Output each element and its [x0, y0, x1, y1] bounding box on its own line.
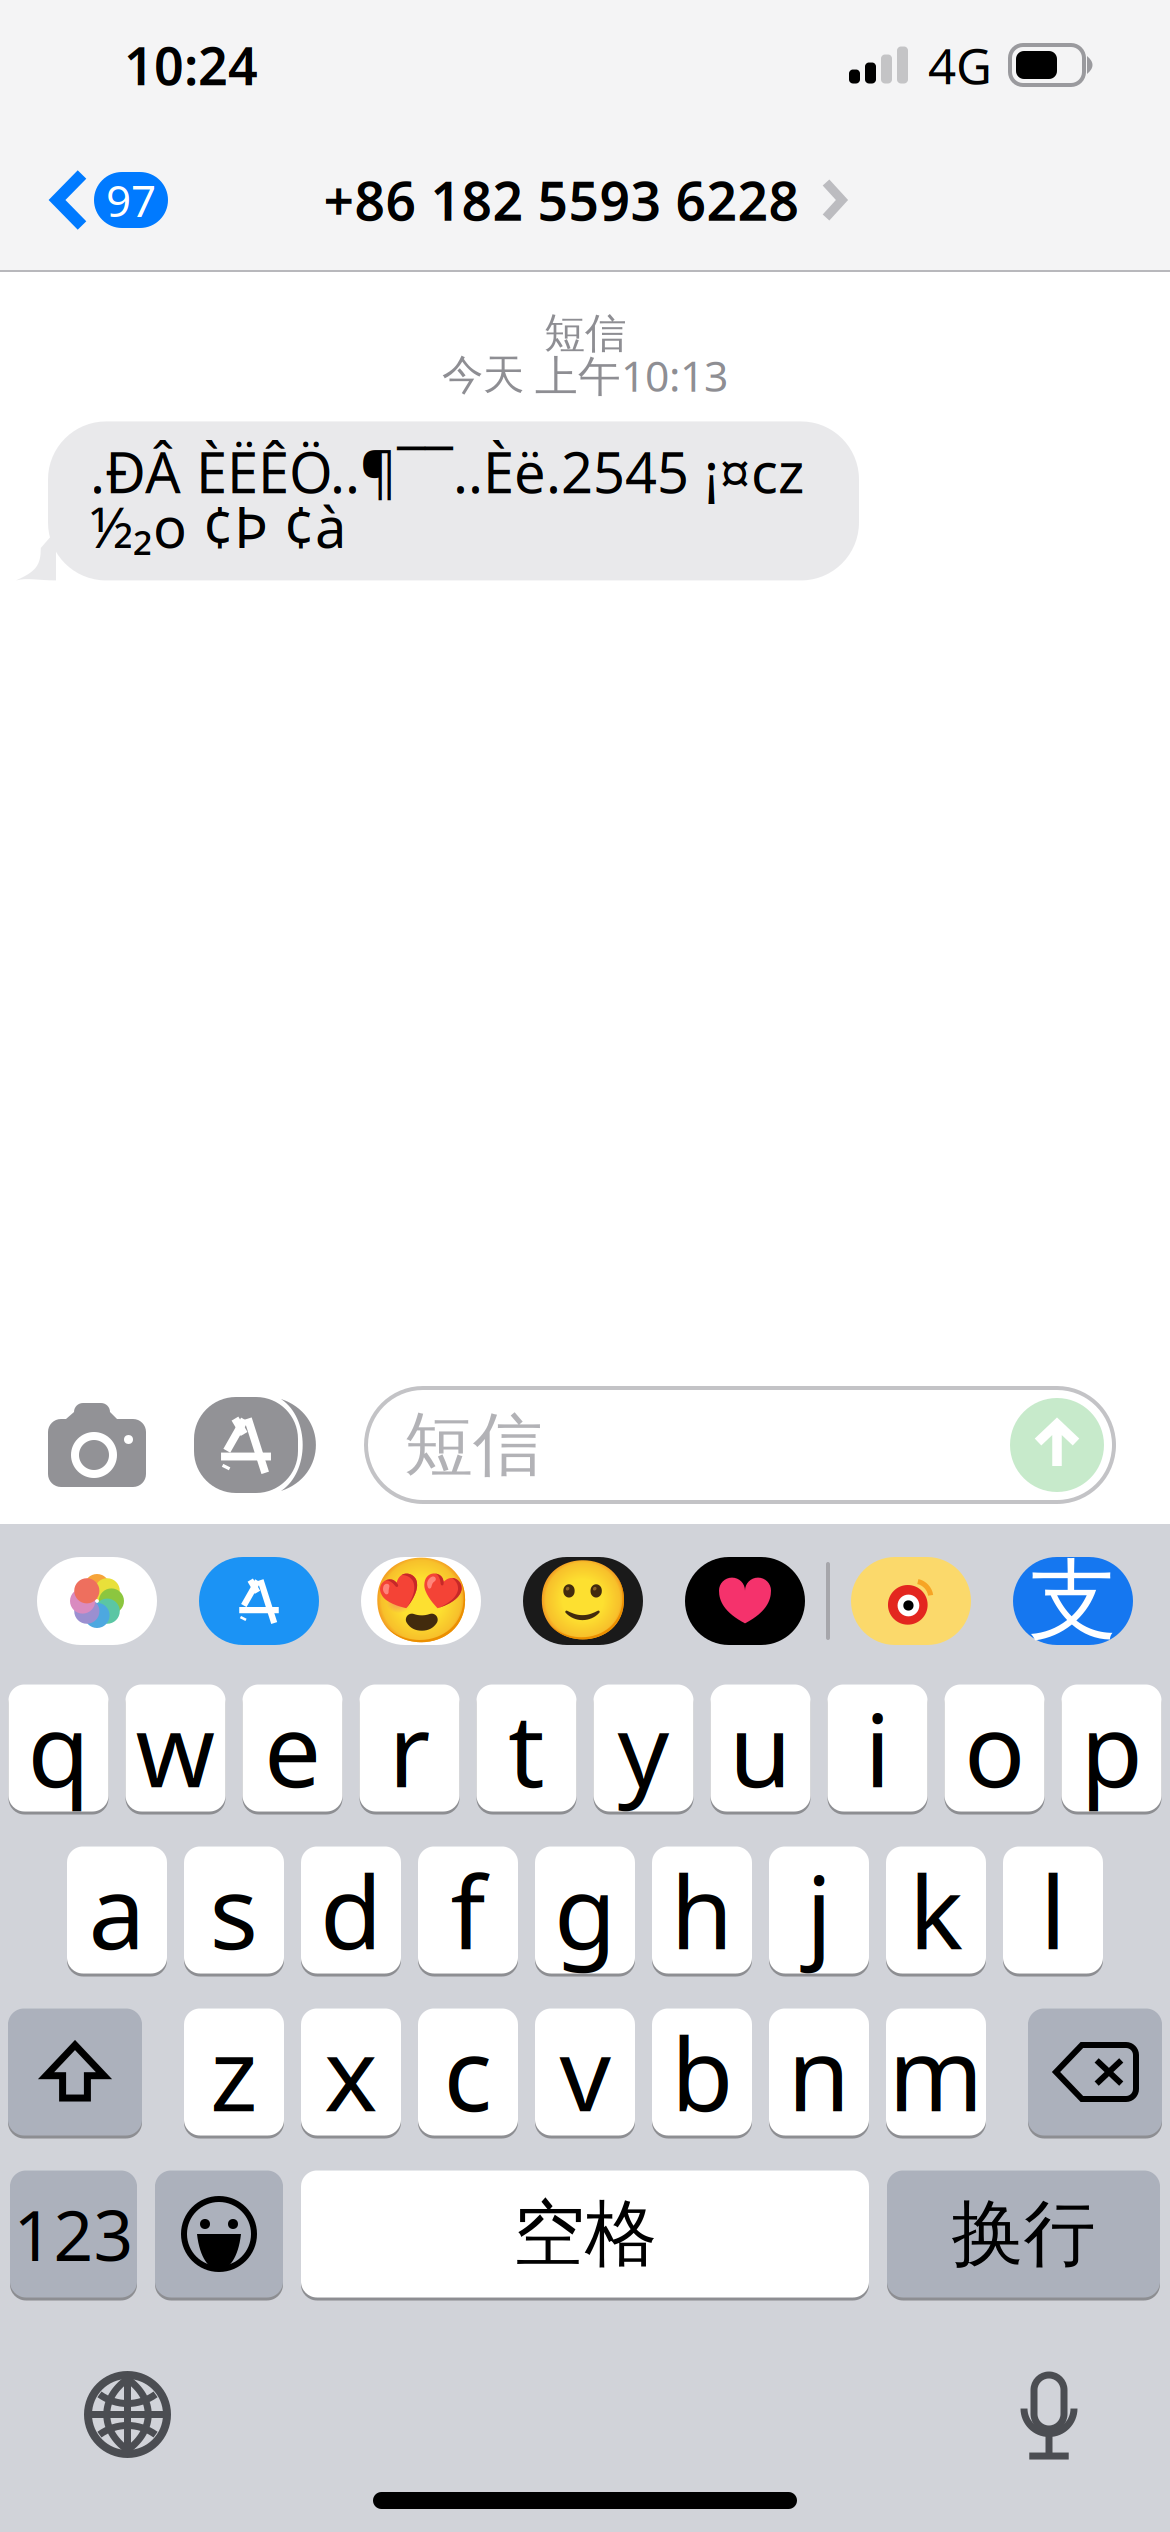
- staticText: 上午10:13: [535, 347, 728, 403]
- button[interactable]: +86 182 5593 6228: [323, 130, 846, 270]
- staticText: p: [1080, 1681, 1142, 1815]
- button[interactable]: t: [476, 1683, 576, 1813]
- button[interactable]: q: [8, 1683, 108, 1813]
- button[interactable]: z: [184, 2007, 284, 2137]
- button[interactable]: v: [535, 2007, 635, 2137]
- button[interactable]: h: [652, 1845, 752, 1975]
- staticText: r: [388, 1681, 430, 1815]
- button[interactable]: 😍: [340, 1557, 502, 1645]
- staticText: .ÐÂ ÈËÊÖ..¶¯¯..Èë.2545 ¡¤cz ½₂o ¢Þ ¢à: [90, 444, 804, 554]
- button[interactable]: p: [1061, 1683, 1161, 1813]
- button[interactable]: 97: [0, 130, 186, 270]
- button[interactable]: Emoji: [155, 2169, 283, 2299]
- staticText: x: [324, 2005, 378, 2139]
- staticText: q: [27, 1681, 89, 1815]
- button[interactable]: g: [535, 1845, 635, 1975]
- button[interactable]: n: [769, 2007, 869, 2137]
- staticText: n: [787, 2005, 850, 2139]
- staticText: k: [909, 1843, 963, 1977]
- staticText: 123: [13, 2188, 133, 2280]
- staticText: f: [450, 1843, 485, 1977]
- staticText: w: [135, 1681, 215, 1815]
- button[interactable]: w: [125, 1683, 225, 1813]
- button[interactable]: [664, 1557, 826, 1645]
- staticText: a: [88, 1843, 145, 1977]
- button[interactable]: y: [593, 1683, 693, 1813]
- button[interactable]: Apps: [186, 1387, 328, 1503]
- button[interactable]: j: [769, 1845, 869, 1975]
- staticText: g: [554, 1843, 616, 1977]
- button[interactable]: i: [827, 1683, 927, 1813]
- button[interactable]: [16, 1557, 178, 1645]
- button[interactable]: s: [184, 1845, 284, 1975]
- staticText: m: [888, 2005, 983, 2139]
- button[interactable]: Delete: [1028, 2007, 1162, 2137]
- staticText: v: [559, 2005, 610, 2139]
- staticText: +86 182 5593 6228: [323, 165, 799, 235]
- staticText: h: [670, 1843, 733, 1977]
- button[interactable]: r: [359, 1683, 459, 1813]
- staticText: 4G: [928, 32, 992, 98]
- button[interactable]: 支: [992, 1557, 1154, 1645]
- button[interactable]: Next keyboard: [70, 2357, 185, 2472]
- button[interactable]: f: [418, 1845, 518, 1975]
- staticText: 10:24: [124, 30, 258, 100]
- staticText: 换行: [951, 2190, 1095, 2278]
- button[interactable]: b: [652, 2007, 752, 2137]
- button[interactable]: Shift: [8, 2007, 142, 2137]
- staticText: j: [806, 1843, 832, 1977]
- button[interactable]: 短信: [366, 1388, 1114, 1502]
- button[interactable]: 换行: [887, 2169, 1160, 2299]
- button[interactable]: 🙂: [502, 1557, 664, 1645]
- staticText: u: [729, 1681, 792, 1815]
- staticText: 😍: [369, 1554, 472, 1648]
- button[interactable]: a: [67, 1845, 167, 1975]
- staticText: e: [264, 1681, 321, 1815]
- staticText: t: [508, 1681, 545, 1815]
- staticText: y: [617, 1681, 669, 1815]
- button[interactable]: e: [242, 1683, 342, 1813]
- staticText: 🙂: [535, 1557, 631, 1645]
- staticText: l: [1040, 1843, 1066, 1977]
- button[interactable]: 空格: [301, 2169, 869, 2299]
- staticText: z: [210, 2005, 258, 2139]
- button[interactable]: c: [418, 2007, 518, 2137]
- staticText: i: [864, 1681, 890, 1815]
- button[interactable]: [830, 1557, 992, 1645]
- button[interactable]: k: [886, 1845, 986, 1975]
- staticText: 支: [1029, 1547, 1117, 1655]
- button[interactable]: Dictation: [1002, 2357, 1096, 2479]
- button[interactable]: l: [1003, 1845, 1103, 1975]
- button[interactable]: o: [944, 1683, 1044, 1813]
- button[interactable]: u: [710, 1683, 810, 1813]
- button[interactable]: 123: [10, 2169, 137, 2299]
- button[interactable]: [178, 1557, 340, 1645]
- staticText: 97: [106, 171, 156, 229]
- staticText: 今天: [442, 350, 524, 400]
- staticText: 空格: [513, 2190, 657, 2278]
- staticText: 短信: [544, 308, 626, 359]
- staticText: s: [209, 1843, 258, 1977]
- staticText: 短信: [404, 1402, 542, 1488]
- staticText: b: [671, 2005, 733, 2139]
- button[interactable]: d: [301, 1845, 401, 1975]
- button[interactable]: Take photo: [38, 1387, 156, 1503]
- staticText: d: [320, 1843, 382, 1977]
- staticText: c: [443, 2005, 492, 2139]
- button[interactable]: x: [301, 2007, 401, 2137]
- staticText: o: [964, 1681, 1025, 1815]
- button[interactable]: m: [886, 2007, 986, 2137]
